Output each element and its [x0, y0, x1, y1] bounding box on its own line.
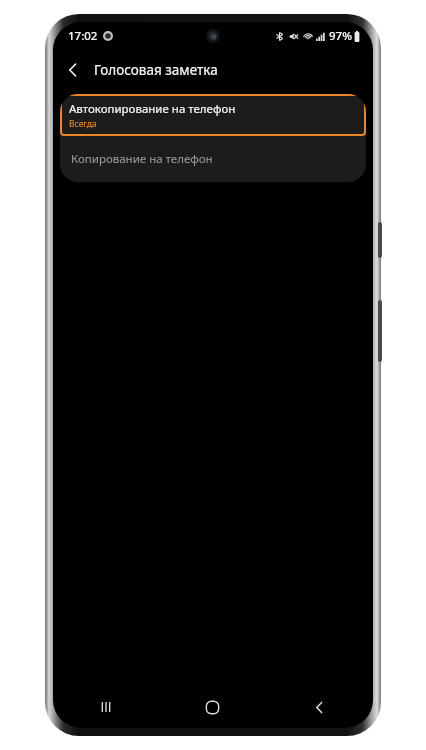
- staticText: 97%: [329, 28, 352, 44]
- button[interactable]: Копирование на телефон: [60, 136, 366, 182]
- button[interactable]: Автокопирование на телефон: [60, 94, 366, 136]
- staticText: Автокопирование на телефон: [69, 101, 236, 117]
- button[interactable]: Главный экран: [159, 686, 266, 728]
- button[interactable]: Назад: [266, 686, 373, 728]
- staticText: Копирование на телефон: [71, 151, 213, 167]
- staticText: Голосовая заметка: [94, 61, 218, 79]
- staticText: Всегда: [69, 118, 97, 130]
- button[interactable]: Последние приложения: [53, 686, 159, 728]
- staticText: 17:02: [68, 28, 98, 44]
- button[interactable]: Назад: [53, 50, 93, 90]
